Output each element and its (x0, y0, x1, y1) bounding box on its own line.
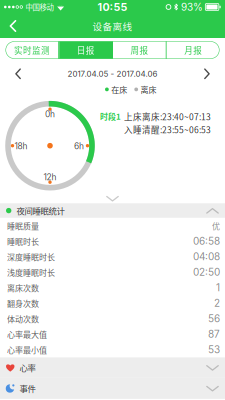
staticText: 入睡清醒:23:55~06:53 (124, 123, 211, 136)
button[interactable]: 周报 (113, 41, 166, 59)
staticText: 体动次数 (7, 313, 39, 324)
button[interactable]: Next period (192, 63, 222, 85)
staticText: 优 (212, 220, 220, 231)
staticText: 10:55 (97, 0, 127, 13)
button[interactable]: 心率 (0, 357, 225, 378)
staticText: 6h (74, 141, 84, 151)
staticText: 离床 (141, 84, 157, 95)
button[interactable]: 日报 (59, 41, 112, 59)
staticText: 周报 (130, 44, 148, 56)
staticText: 06:58 (193, 235, 220, 247)
staticText: 上床离床:23:40~07:13 (124, 110, 211, 123)
staticText: 实时监测 (14, 44, 50, 56)
staticText: 心率最大值 (7, 328, 47, 340)
button[interactable]: 月报 (167, 41, 220, 59)
staticText: 53 (208, 344, 220, 356)
staticText: 心率最小值 (7, 344, 47, 355)
staticText: 离床次数 (7, 282, 39, 293)
staticText: 18h (14, 141, 27, 151)
staticText: 0h (45, 109, 55, 119)
staticText: 2 (214, 297, 220, 309)
staticText: 04:08 (193, 251, 220, 263)
staticText: 1 (216, 282, 220, 294)
staticText: 翻身次数 (7, 297, 39, 309)
staticText: 56 (208, 313, 220, 325)
staticText: 2017.04.05 - 2017.04.06 (67, 69, 157, 79)
staticText: 87 (208, 328, 220, 340)
button[interactable]: 夜间睡眠统计 (0, 203, 225, 218)
staticText: 深度睡眠时长 (7, 251, 55, 262)
staticText: 浅度睡眠时长 (7, 266, 55, 278)
staticText: 事件 (19, 382, 35, 394)
staticText: 睡眠时长 (7, 235, 39, 247)
button[interactable]: 实时监测 (5, 41, 58, 59)
staticText: 在床 (111, 84, 127, 95)
staticText: 中国移动 (26, 2, 54, 12)
staticText: 设备离线 (92, 19, 132, 33)
staticText: 月报 (184, 44, 202, 56)
button[interactable]: Back (0, 14, 26, 38)
staticText: 日报 (77, 44, 95, 56)
staticText: 93% (181, 1, 203, 13)
staticText: 心率 (19, 362, 35, 374)
staticText: 02:50 (193, 266, 220, 278)
staticText: 夜间睡眠统计 (16, 204, 64, 217)
staticText: 睡眠质量 (7, 220, 39, 231)
button[interactable]: 事件 (0, 378, 225, 399)
staticText: 时段1 (100, 110, 121, 122)
button[interactable]: Previous period (3, 63, 33, 85)
staticText: 12h (43, 172, 56, 182)
